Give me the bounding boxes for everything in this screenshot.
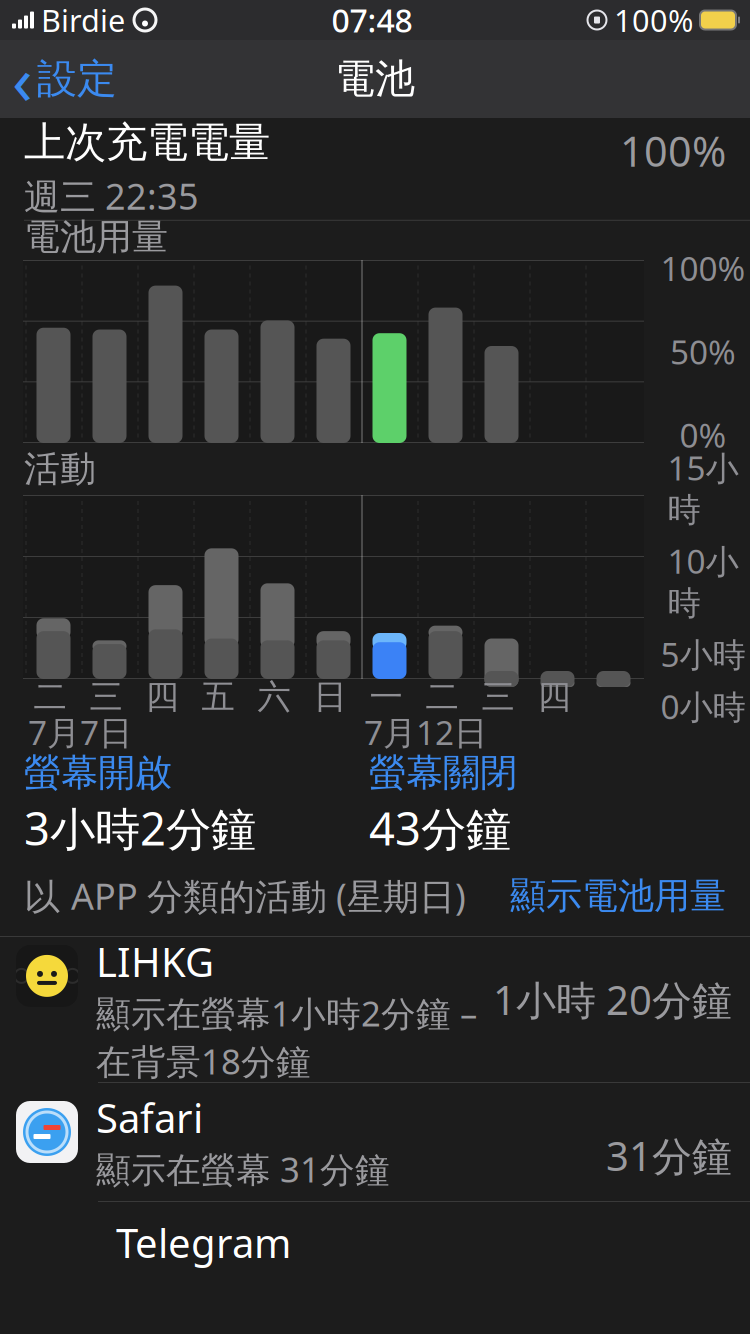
- staticText: 顯示在螢幕1小時2分鐘 –: [96, 990, 477, 1036]
- staticText: 以 APP 分類的活動 (星期日): [24, 872, 466, 920]
- staticText: 顯示電池用量: [510, 874, 726, 918]
- staticText: 顯示在螢幕 31分鐘: [96, 1146, 390, 1192]
- staticText: 活動: [24, 447, 96, 491]
- button[interactable]: ‹: [0, 27, 117, 131]
- staticText: 7月12日: [364, 710, 487, 754]
- staticText: 二: [33, 676, 66, 717]
- staticText: 設定: [37, 54, 117, 103]
- staticText: Birdie: [41, 0, 125, 40]
- staticText: 43分鐘: [369, 798, 511, 858]
- button[interactable]: 顯示電池用量: [510, 868, 750, 924]
- staticText: 一: [369, 676, 402, 717]
- staticText: 上次充電電量: [24, 117, 270, 168]
- staticText: 在背景18分鐘: [96, 1038, 311, 1084]
- staticText: ‹: [12, 35, 33, 123]
- staticText: 100%: [614, 0, 693, 40]
- staticText: 50%: [670, 329, 736, 374]
- staticText: 螢幕關閉: [369, 750, 517, 796]
- staticText: 3小時2分鐘: [24, 798, 256, 858]
- staticText: 螢幕開啟: [24, 750, 172, 796]
- staticText: 0小時: [660, 684, 745, 728]
- staticText: 三: [481, 676, 514, 717]
- staticText: 10小時: [667, 539, 738, 624]
- staticText: 15小時: [667, 445, 738, 531]
- staticText: 六: [257, 676, 290, 717]
- staticText: 週三 22:35: [24, 172, 199, 220]
- button[interactable]: Safari: [0, 1083, 750, 1201]
- staticText: 四: [537, 676, 570, 717]
- staticText: 四: [145, 676, 178, 717]
- staticText: 100%: [660, 246, 745, 290]
- staticText: Telegram: [116, 1216, 291, 1269]
- staticText: 三: [89, 676, 122, 717]
- staticText: 31分鐘: [606, 1129, 732, 1182]
- staticText: 五: [201, 676, 234, 717]
- staticText: 電池用量: [24, 215, 168, 259]
- staticText: Safari: [96, 1091, 203, 1144]
- staticText: 1小時 20分鐘: [493, 973, 732, 1026]
- button[interactable]: LIHKG: [0, 927, 750, 1092]
- staticText: 7月7日: [28, 710, 132, 754]
- staticText: LIHKG: [96, 935, 214, 988]
- staticText: 0%: [679, 413, 726, 457]
- staticText: 07:48: [331, 0, 412, 41]
- staticText: 100%: [620, 123, 726, 178]
- staticText: 日: [313, 676, 346, 717]
- staticText: 5小時: [660, 632, 745, 676]
- staticText: 電池: [335, 54, 415, 103]
- staticText: 二: [425, 676, 458, 717]
